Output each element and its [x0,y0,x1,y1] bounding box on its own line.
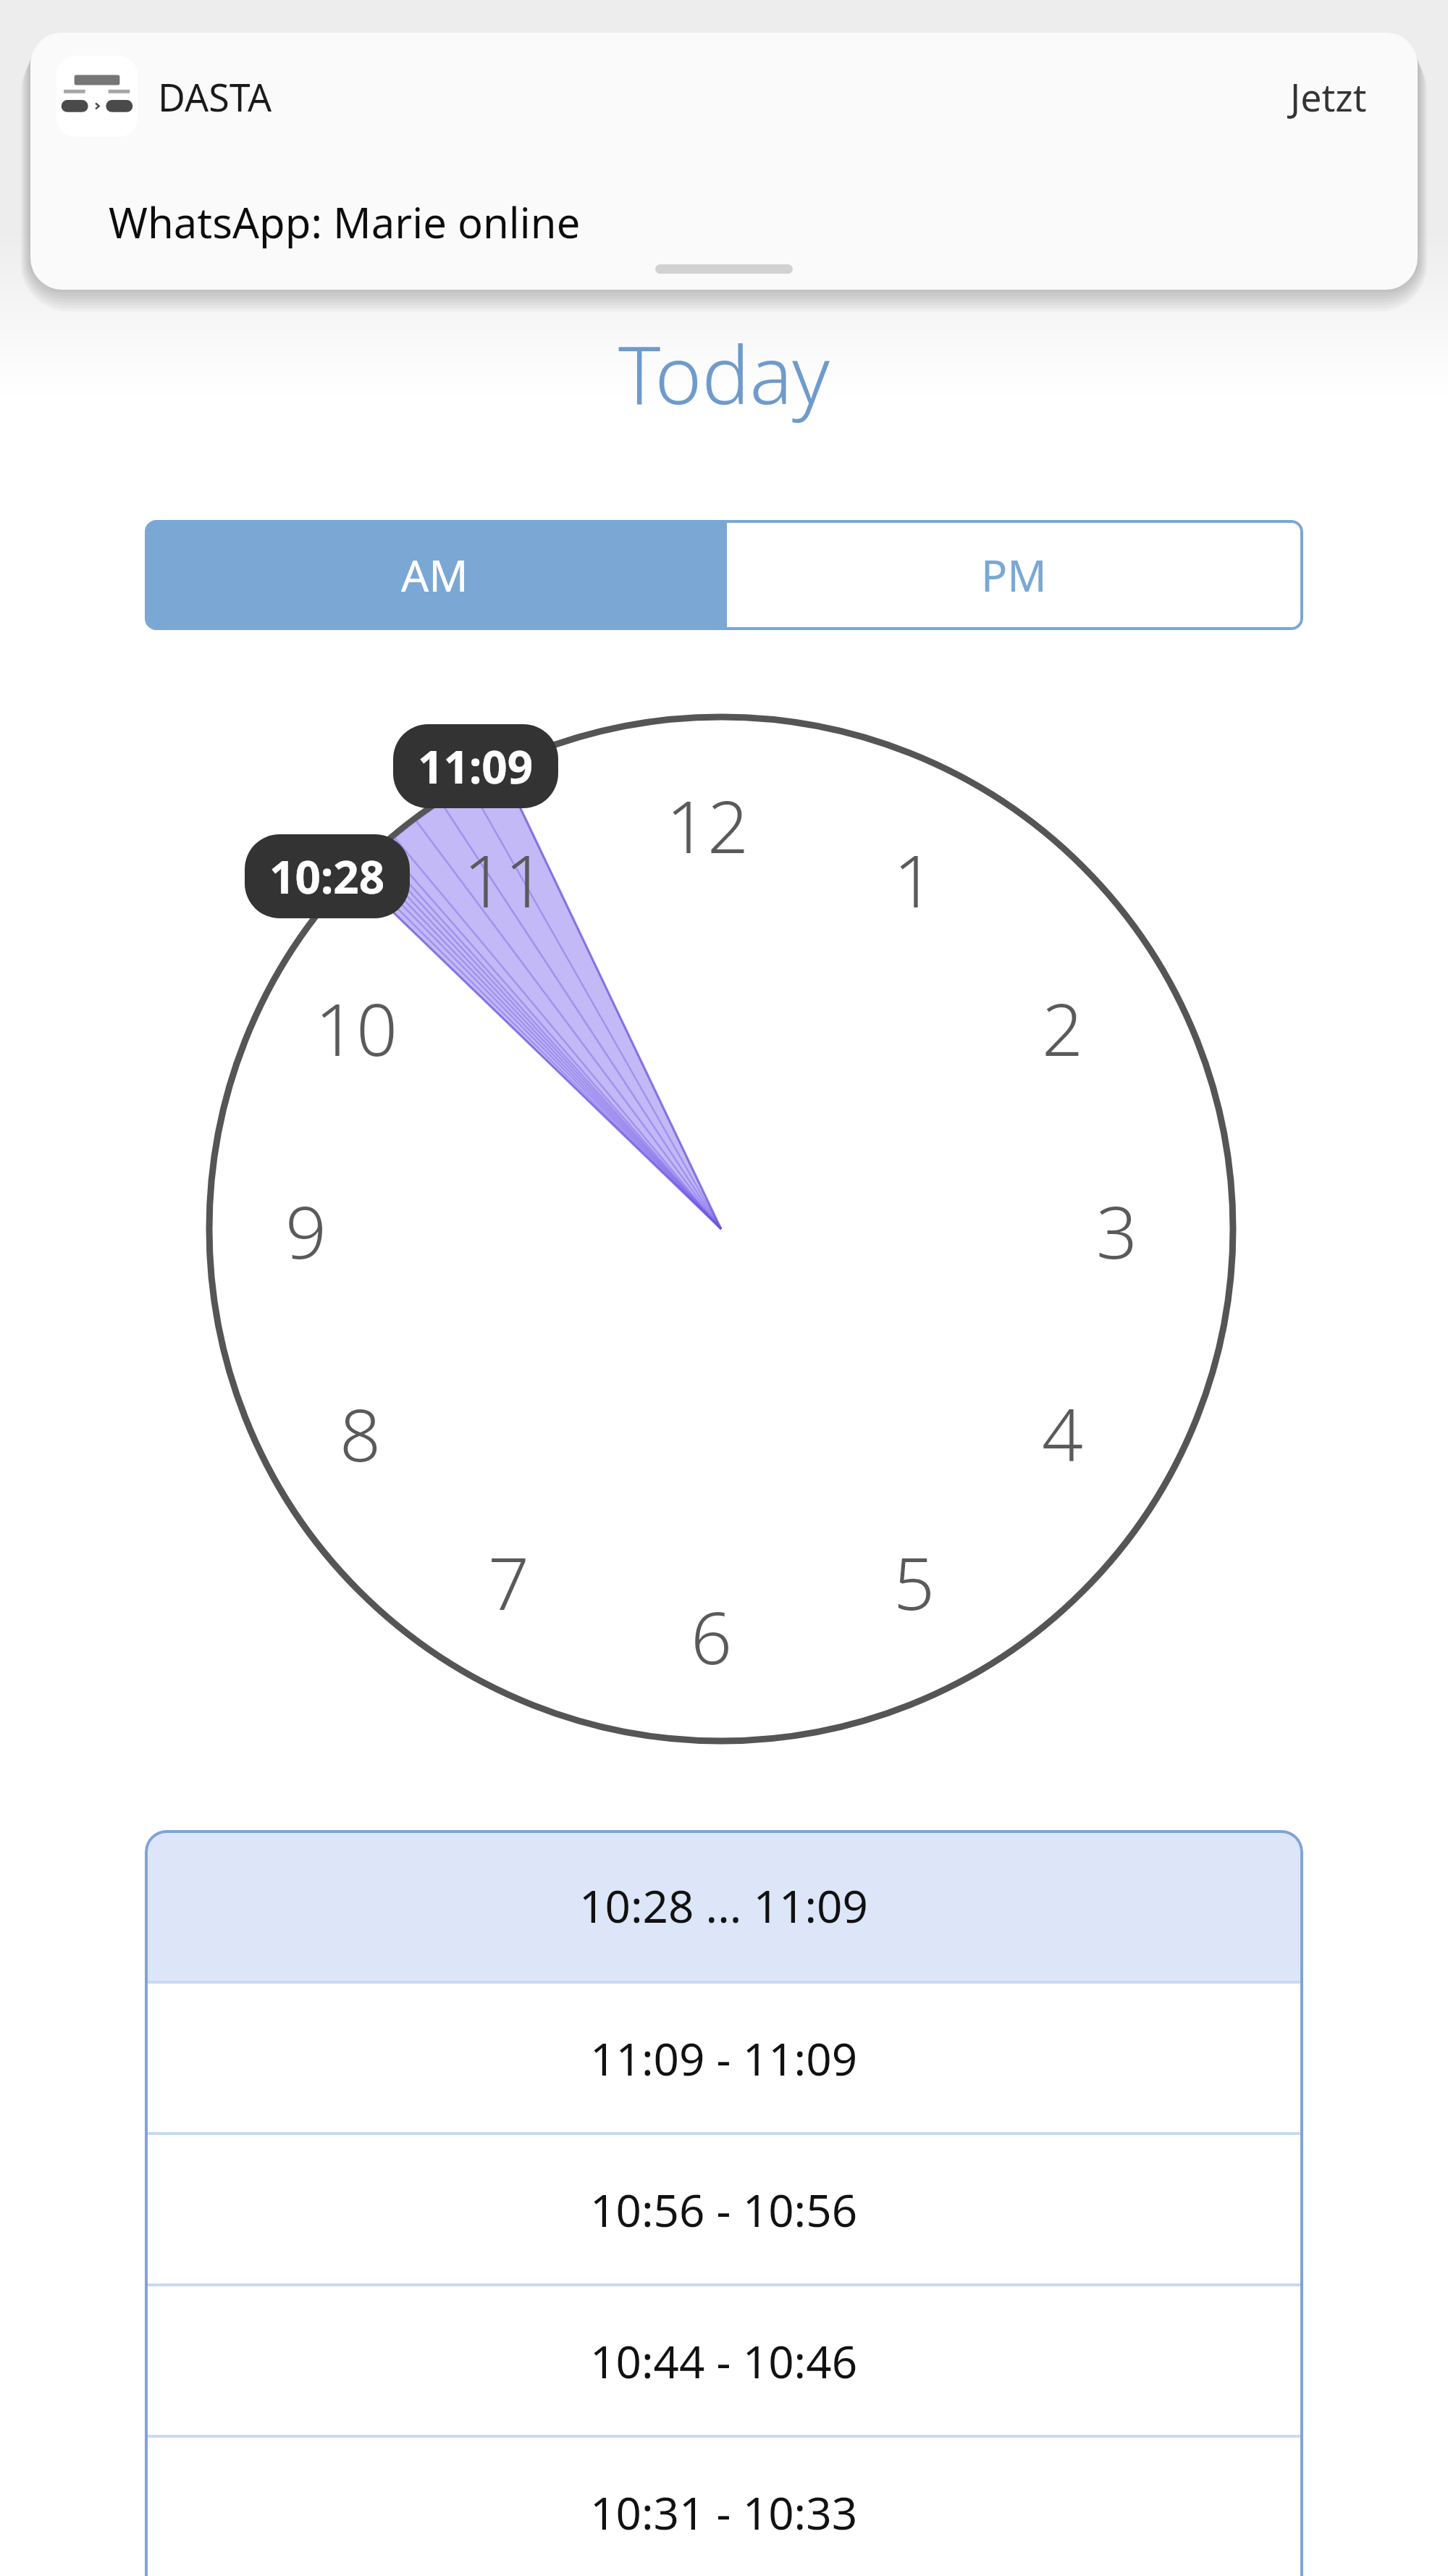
button[interactable]: 11:09 - 11:09 [145,1984,1303,2132]
staticText: Today [618,319,830,427]
button[interactable]: 10:28 ... 11:09 [145,1830,1303,1981]
staticText: 9 [285,1181,327,1280]
staticText: 6 [691,1587,733,1685]
staticText: 11:09 [418,736,534,797]
button[interactable]: 10:56 - 10:56 [145,2135,1303,2283]
staticText: PM [981,545,1047,605]
staticText: 2 [1042,978,1084,1077]
staticText: 11 [463,830,547,928]
button[interactable]: AM [145,520,724,630]
button[interactable]: 10:31 - 10:33 [145,2438,1303,2576]
staticText: Jetzt [1290,71,1367,122]
staticText: 10 [315,978,398,1077]
button[interactable]: 11:09 [393,724,558,808]
staticText: WhatsApp: Marie online [109,193,581,251]
button[interactable]: DASTA [30,33,1418,290]
staticText: 10:31 - 10:33 [590,2482,858,2543]
button[interactable]: PM [724,520,1303,630]
staticText: 10:28 [269,846,385,907]
button[interactable]: 10:28 [245,834,410,918]
staticText: 11:09 - 11:09 [590,2028,858,2089]
staticText: 5 [893,1532,935,1631]
staticText: 10:44 - 10:46 [590,2330,858,2391]
staticText: 8 [340,1384,382,1482]
staticText: 10:56 - 10:56 [590,2179,858,2240]
button[interactable]: 10:44 - 10:46 [145,2286,1303,2435]
staticText: 10:28 ... 11:09 [579,1875,869,1936]
staticText: 12 [666,776,749,874]
staticText: DASTA [158,71,272,122]
staticText: AM [401,545,468,605]
staticText: 3 [1096,1181,1138,1280]
staticText: 1 [893,830,935,928]
other: Activity clock dial [0,674,1448,1803]
staticText: 4 [1042,1384,1084,1482]
staticText: 7 [488,1532,530,1631]
